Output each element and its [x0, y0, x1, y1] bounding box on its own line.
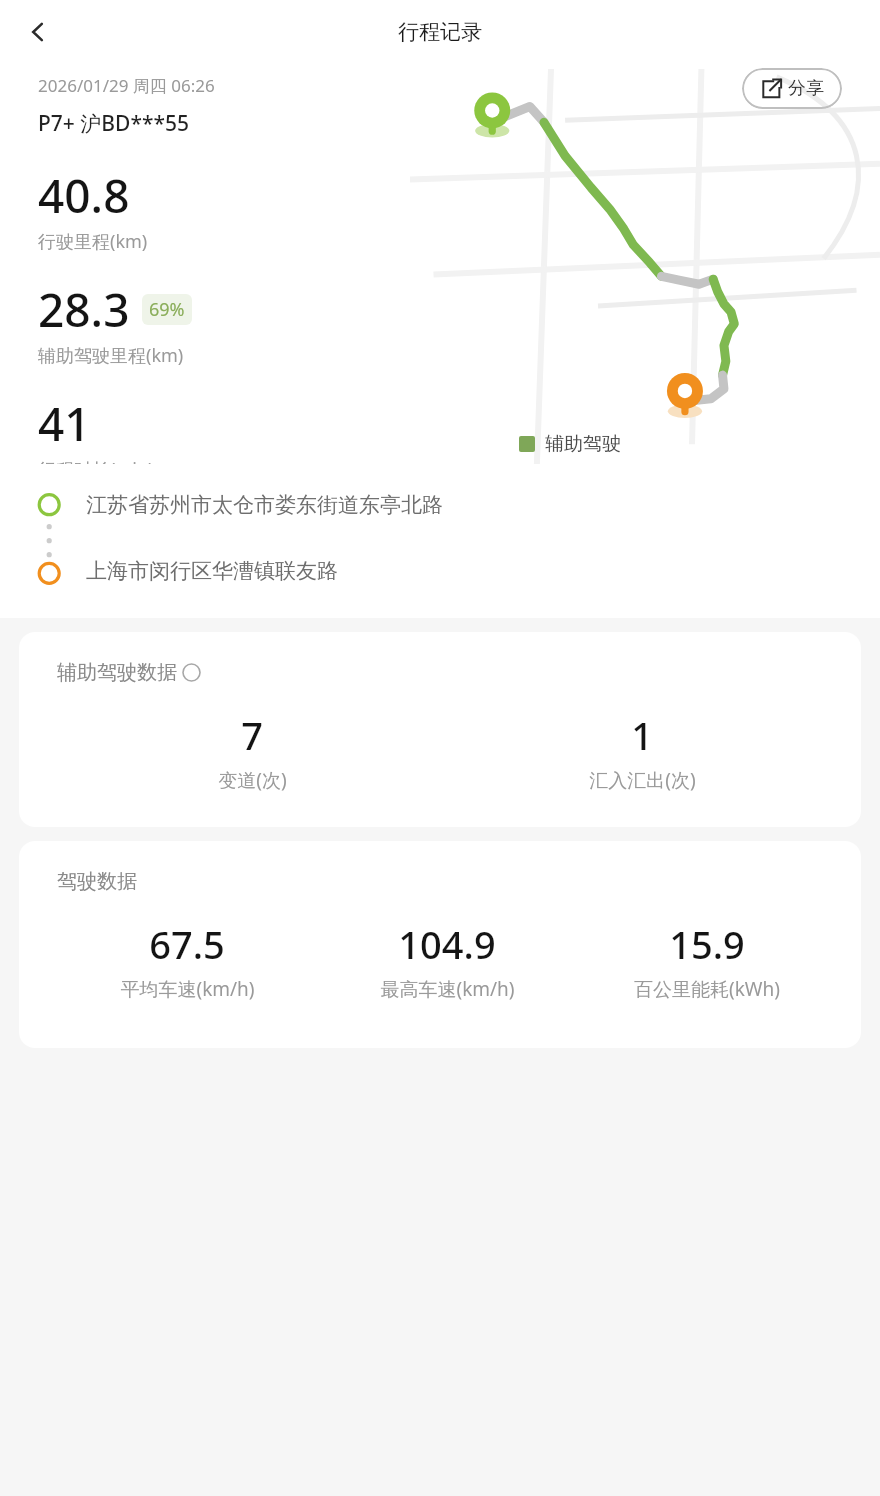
- staticText: 行程记录: [398, 19, 482, 45]
- staticText: 分享: [788, 77, 824, 100]
- staticText: 2026/01/29 周四 06:26: [38, 74, 215, 97]
- button[interactable]: 分享: [742, 68, 842, 109]
- staticText: 辅助驾驶里程(km): [38, 343, 184, 368]
- staticText: 104.9: [398, 918, 496, 970]
- staticText: 69%: [149, 297, 185, 322]
- staticText: 上海市闵行区华漕镇联友路: [86, 558, 338, 584]
- staticText: 百公里能耗(kWh): [634, 976, 780, 1002]
- staticText: 41: [38, 392, 91, 455]
- staticText: 15.9: [669, 918, 745, 970]
- staticText: 行驶里程(km): [38, 229, 148, 254]
- staticText: 1: [631, 709, 653, 761]
- staticText: 汇入汇出(次): [589, 767, 696, 793]
- staticText: P7+ 沪BD***55: [38, 109, 189, 138]
- staticText: 辅助驾驶数据: [57, 660, 177, 685]
- staticText: 40.8: [38, 164, 130, 227]
- staticText: 最高车速(km/h): [380, 976, 515, 1002]
- staticText: 变道(次): [218, 767, 287, 793]
- staticText: 驾驶数据: [57, 869, 137, 894]
- staticText: 行程时长(min): [38, 457, 154, 464]
- staticText: 28.3: [38, 278, 130, 341]
- button[interactable]: Back: [14, 8, 62, 56]
- button[interactable]: 辅助驾驶数据: [19, 632, 861, 827]
- staticText: 江苏省苏州市太仓市娄东街道东亭北路: [86, 492, 443, 518]
- staticText: 7: [241, 709, 263, 761]
- staticText: 辅助驾驶: [545, 432, 621, 456]
- button[interactable]: 驾驶数据: [19, 841, 861, 1048]
- staticText: 平均车速(km/h): [120, 976, 255, 1002]
- staticText: 67.5: [149, 918, 225, 970]
